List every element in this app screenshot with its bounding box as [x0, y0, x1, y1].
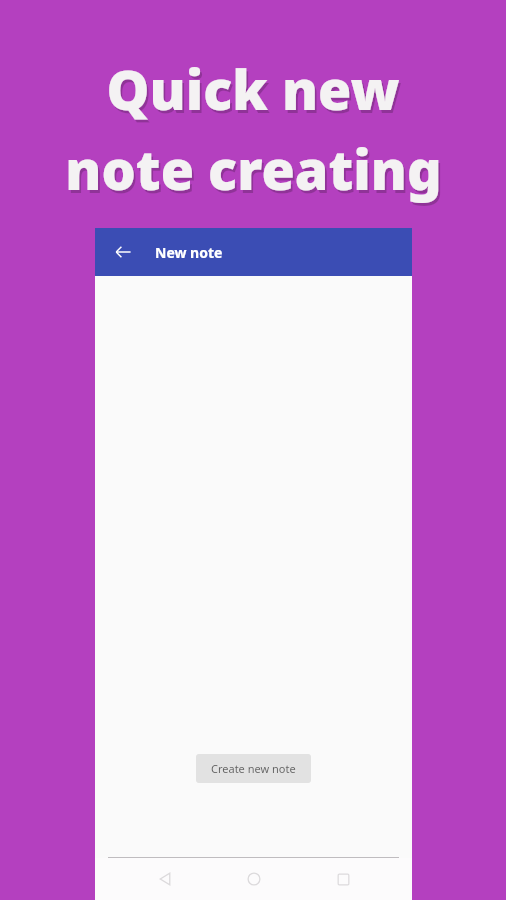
staticText: note creating: [65, 132, 442, 206]
staticText: Quick new: [106, 52, 400, 126]
button[interactable]: Create new note: [196, 754, 311, 783]
button[interactable]: Back: [145, 859, 185, 899]
staticText: New note: [155, 243, 223, 262]
staticText: Create new note: [211, 761, 296, 776]
staticText: Quick new: [108, 55, 402, 129]
button[interactable]: Recents: [323, 859, 363, 899]
button[interactable]: Back: [105, 234, 141, 270]
staticText: note creating: [67, 135, 444, 209]
button[interactable]: Home: [234, 859, 274, 899]
